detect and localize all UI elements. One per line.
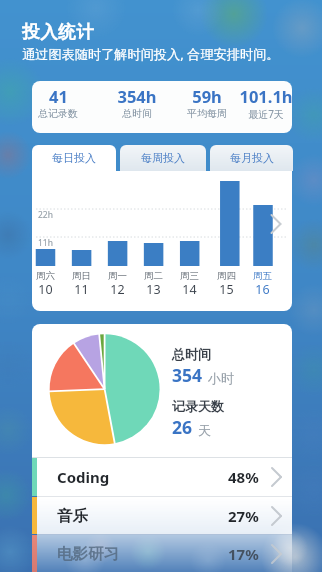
button[interactable]: 音乐 bbox=[32, 497, 292, 534]
staticText: 41 bbox=[49, 85, 68, 107]
staticText: 48% bbox=[228, 467, 259, 487]
button[interactable]: 每月投入 bbox=[210, 145, 293, 171]
staticText: 周一 bbox=[108, 270, 127, 282]
button[interactable]: 电影研习 bbox=[32, 535, 292, 572]
button[interactable]: Coding bbox=[32, 458, 292, 496]
staticText: 记录天数 bbox=[172, 398, 224, 414]
staticText: 周日 bbox=[72, 270, 91, 282]
staticText: 每月投入 bbox=[230, 151, 274, 165]
staticText: 音乐 bbox=[57, 506, 88, 526]
staticText: 天 bbox=[198, 422, 211, 438]
staticText: 11 bbox=[74, 281, 89, 298]
staticText: 17% bbox=[228, 544, 259, 564]
staticText: 16 bbox=[255, 281, 270, 298]
staticText: 电影研习 bbox=[57, 544, 119, 564]
staticText: 11h bbox=[38, 237, 53, 249]
staticText: 周五 bbox=[253, 270, 272, 282]
staticText: Coding bbox=[57, 467, 110, 487]
staticText: 周二 bbox=[144, 270, 163, 282]
staticText: 每日投入 bbox=[52, 151, 96, 165]
staticText: 每周投入 bbox=[141, 151, 185, 165]
staticText: 总记录数 bbox=[38, 107, 78, 120]
staticText: 101.1h bbox=[239, 85, 292, 107]
staticText: 13 bbox=[146, 281, 161, 298]
staticText: 14 bbox=[182, 281, 197, 298]
staticText: 10 bbox=[38, 281, 53, 298]
button[interactable]: 每日投入 bbox=[32, 145, 116, 171]
staticText: 354h bbox=[117, 85, 157, 107]
staticText: 最近7天 bbox=[248, 107, 284, 121]
staticText: 总时间 bbox=[172, 346, 211, 362]
staticText: 总时间 bbox=[122, 107, 152, 120]
staticText: 12 bbox=[110, 281, 125, 298]
staticText: 15 bbox=[219, 281, 234, 298]
button[interactable]: 41 bbox=[32, 81, 292, 133]
staticText: 周三 bbox=[180, 270, 199, 282]
staticText: 27% bbox=[228, 506, 259, 526]
staticText: 354 bbox=[172, 363, 203, 387]
staticText: 26 bbox=[172, 415, 193, 439]
staticText: 59h bbox=[192, 85, 222, 107]
staticText: 小时 bbox=[208, 370, 234, 386]
button[interactable]: 每周投入 bbox=[120, 145, 206, 171]
staticText: 通过图表随时了解时间投入, 合理安排时间。 bbox=[22, 45, 280, 63]
staticText: 22h bbox=[38, 209, 53, 221]
staticText: 周六 bbox=[36, 270, 55, 282]
staticText: 平均每周 bbox=[187, 107, 227, 120]
staticText: 投入统计 bbox=[22, 21, 94, 43]
staticText: 周四 bbox=[217, 270, 236, 282]
